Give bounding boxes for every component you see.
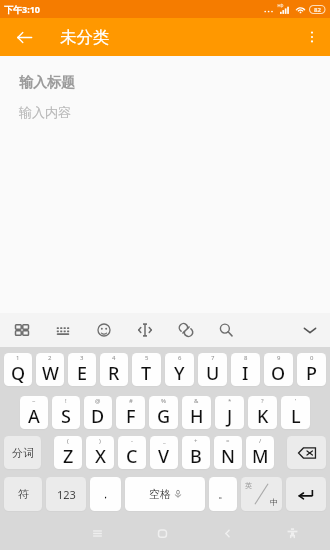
button[interactable]: Clipboard	[174, 313, 198, 347]
staticText: 3	[80, 354, 84, 362]
staticText: L	[291, 404, 301, 429]
button[interactable]: 0	[297, 353, 326, 386]
button[interactable]: 。	[209, 477, 237, 511]
staticText: 9	[277, 354, 281, 362]
staticText: )	[99, 437, 101, 445]
button[interactable]: _	[150, 436, 178, 469]
button[interactable]: 符	[4, 477, 42, 511]
staticText: 5	[145, 354, 149, 362]
staticText: E	[77, 361, 88, 386]
staticText: -	[131, 437, 133, 445]
button[interactable]: -	[118, 436, 146, 469]
staticText: P	[306, 361, 317, 386]
button[interactable]: )	[86, 436, 114, 469]
staticText: Y	[174, 361, 185, 386]
staticText: S	[61, 404, 71, 429]
button[interactable]: Keyboard	[51, 313, 75, 347]
staticText: =	[226, 437, 230, 445]
button[interactable]: Search	[214, 313, 238, 347]
button[interactable]: 分词	[4, 436, 41, 469]
button[interactable]: 2	[36, 353, 64, 386]
button[interactable]: Emoji	[92, 313, 116, 347]
button[interactable]: More options	[297, 22, 327, 52]
button[interactable]: !	[52, 396, 80, 429]
staticText: 4	[112, 354, 116, 362]
staticText: ’	[295, 397, 297, 405]
button[interactable]: ?	[248, 396, 277, 429]
staticText: Z	[63, 444, 74, 469]
button[interactable]: 8	[231, 353, 260, 386]
staticText: 输入标题	[19, 74, 75, 92]
staticText: _	[163, 437, 166, 445]
button[interactable]: Hide keyboard	[298, 313, 322, 347]
staticText: O	[271, 361, 286, 386]
staticText: ，	[100, 487, 111, 501]
button[interactable]: 4	[100, 353, 128, 386]
staticText: +	[194, 437, 198, 445]
button[interactable]: *	[215, 396, 244, 429]
button[interactable]: ’	[281, 396, 310, 429]
staticText: I	[242, 361, 249, 386]
staticText: J	[227, 404, 233, 429]
button[interactable]: 7	[198, 353, 227, 386]
staticText: Q	[11, 361, 26, 386]
staticText: (	[67, 437, 69, 445]
staticText: 英	[245, 481, 252, 490]
staticText: 分词	[12, 446, 34, 460]
staticText: #	[129, 397, 133, 405]
button[interactable]: Recents	[83, 519, 111, 547]
button[interactable]: Enter	[286, 477, 326, 511]
button[interactable]: #	[116, 396, 145, 429]
staticText: B	[190, 444, 202, 469]
staticText: 82	[314, 6, 321, 14]
button[interactable]: +	[182, 436, 210, 469]
button[interactable]: &	[182, 396, 211, 429]
staticText: &	[194, 397, 199, 405]
button[interactable]: Move cursor	[133, 313, 157, 347]
staticText: M	[252, 444, 269, 469]
button[interactable]: Backspace	[287, 436, 326, 469]
staticText: D	[91, 404, 105, 429]
button[interactable]: 3	[68, 353, 96, 386]
button[interactable]: 1	[4, 353, 32, 386]
staticText: 输入内容	[19, 104, 71, 120]
button[interactable]: Back	[8, 21, 40, 53]
staticText: 6	[178, 354, 182, 362]
staticText: H	[190, 404, 204, 429]
staticText: X	[95, 444, 106, 469]
button[interactable]: Home	[148, 519, 176, 547]
button[interactable]: /	[246, 436, 274, 469]
staticText: 。	[218, 487, 229, 501]
staticText: N	[221, 444, 235, 469]
staticText: V	[158, 444, 170, 469]
staticText: /	[259, 437, 262, 445]
button[interactable]: (	[54, 436, 82, 469]
button[interactable]: 空格	[125, 477, 205, 511]
button[interactable]: 5	[132, 353, 161, 386]
button[interactable]: %	[149, 396, 178, 429]
staticText: ?	[261, 397, 264, 405]
button[interactable]: Hide keyboard	[278, 519, 306, 547]
staticText: !	[65, 397, 67, 405]
staticText: %	[161, 397, 166, 405]
button[interactable]: =	[214, 436, 242, 469]
staticText: R	[108, 361, 120, 386]
button[interactable]: Switch language	[241, 477, 282, 511]
button[interactable]: 123	[46, 477, 86, 511]
button[interactable]: ~	[20, 396, 48, 429]
staticText: 7	[211, 354, 215, 362]
staticText: T	[141, 361, 152, 386]
staticText: 1	[16, 354, 20, 362]
staticText: 中	[270, 497, 278, 507]
staticText: C	[126, 444, 138, 469]
staticText: *	[228, 397, 232, 405]
button[interactable]: ，	[90, 477, 121, 511]
button[interactable]: @	[84, 396, 112, 429]
staticText: G	[157, 404, 171, 429]
button[interactable]: 6	[165, 353, 194, 386]
staticText: 2	[48, 354, 52, 362]
button[interactable]: Keyboard layout	[10, 313, 34, 347]
button[interactable]: 9	[264, 353, 293, 386]
staticText: 符	[18, 487, 29, 501]
